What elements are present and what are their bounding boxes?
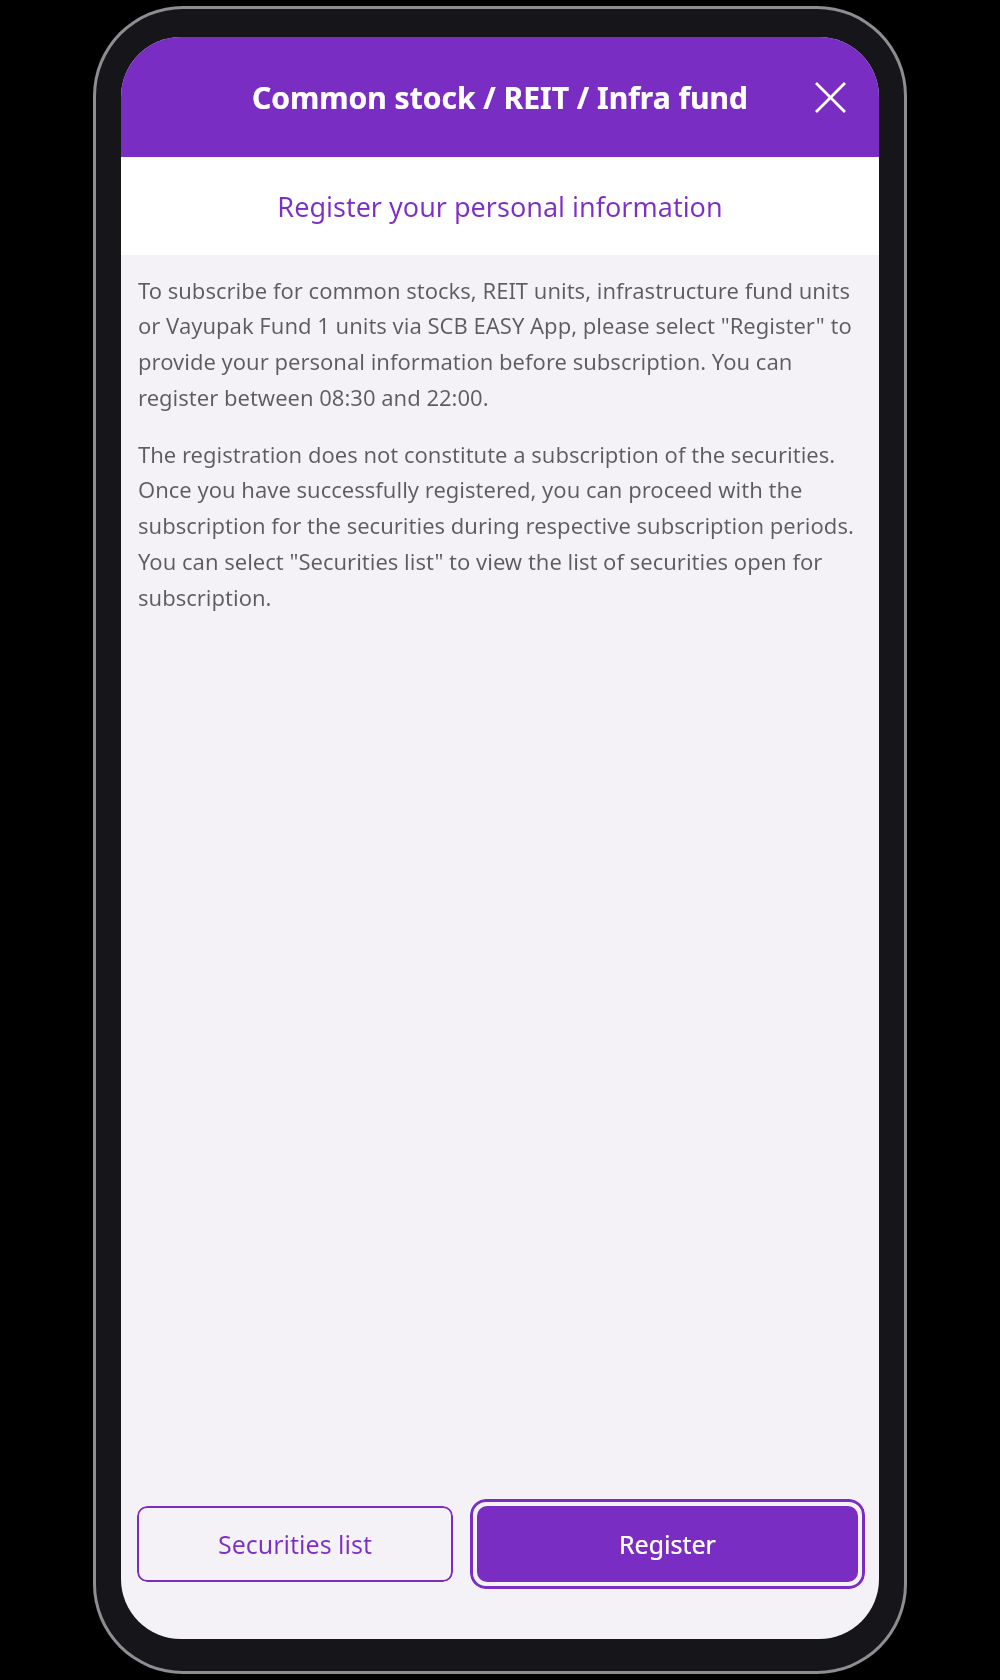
staticText: Register [619,1527,716,1561]
button[interactable]: Close [801,68,859,126]
staticText: To subscribe for common stocks, REIT uni… [138,275,866,413]
button[interactable]: Register [477,1506,858,1582]
button[interactable]: Securities list [137,1506,453,1582]
staticText: Common stock / REIT / Infra fund [252,77,748,118]
staticText: The registration does not constitute a s… [138,439,866,613]
staticText: Securities list [218,1527,373,1561]
staticText: Register your personal information [277,188,723,225]
